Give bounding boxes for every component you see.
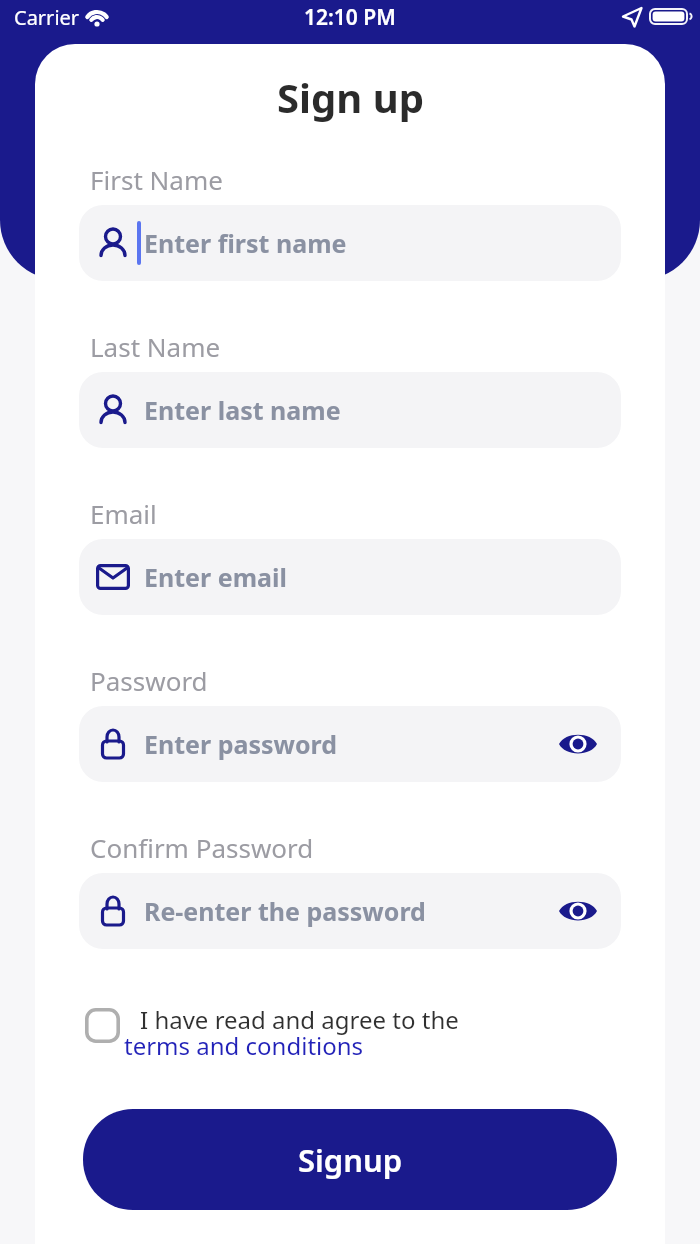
staticText: Enter password	[144, 727, 338, 761]
staticText: Sign up	[277, 70, 424, 124]
button[interactable]	[558, 897, 598, 925]
staticText: Password	[90, 663, 208, 698]
staticText: Enter email	[144, 560, 287, 594]
staticText: First Name	[90, 162, 223, 197]
button[interactable]: Re-enter the password	[79, 873, 621, 949]
button[interactable]: Enter email	[79, 539, 621, 615]
staticText: Email	[90, 496, 157, 531]
button[interactable]	[558, 730, 598, 758]
button[interactable]	[85, 1008, 120, 1043]
staticText: Signup	[298, 1139, 403, 1181]
button[interactable]: Enter last name	[79, 372, 621, 448]
button[interactable]: Enter password	[79, 706, 621, 782]
button[interactable]: terms and conditions	[124, 1029, 364, 1062]
button[interactable]: Enter first name	[79, 205, 621, 281]
staticText: Enter first name	[144, 226, 347, 260]
staticText: 12:10 PM	[304, 3, 396, 32]
staticText: Confirm Password	[90, 830, 314, 865]
staticText: Enter last name	[144, 393, 341, 427]
staticText: Last Name	[90, 329, 221, 364]
button[interactable]: Signup	[83, 1109, 617, 1210]
staticText: Carrier	[14, 4, 80, 31]
staticText: Re-enter the password	[144, 894, 426, 928]
staticText: I have read and agree to the	[140, 1003, 459, 1036]
